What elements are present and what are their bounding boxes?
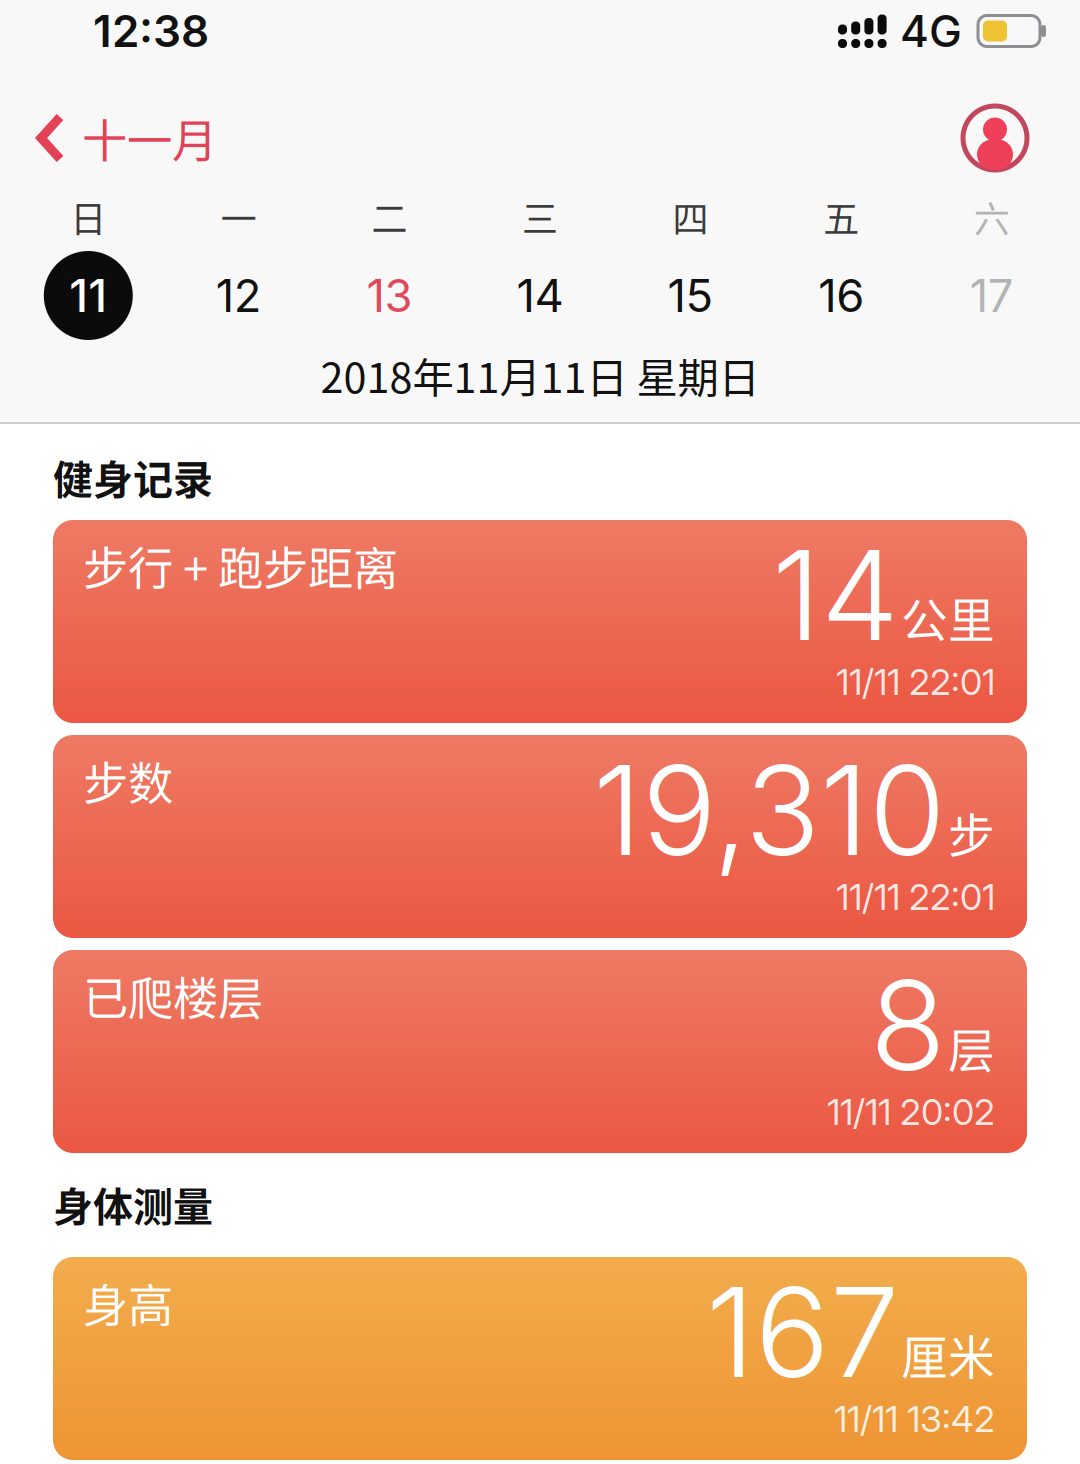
staticText: 12:38 [93, 4, 209, 58]
staticText: 层 [948, 1013, 995, 1081]
staticText: 4G [900, 4, 962, 58]
staticText: 11/11 22:01 [836, 875, 995, 919]
staticText: 步行 + 跑步距离 [83, 533, 398, 599]
staticText: 健身记录 [53, 448, 213, 506]
button[interactable]: Profile [942, 105, 1080, 171]
button[interactable]: 17 [916, 251, 1067, 340]
staticText: 步数 [83, 748, 173, 814]
button[interactable]: 身高 [53, 1257, 1027, 1460]
button[interactable]: 步行 + 跑步距离 [53, 520, 1027, 723]
button[interactable]: 12 [164, 251, 314, 340]
staticText: 167 [706, 1257, 899, 1407]
staticText: 三 [522, 191, 558, 243]
button[interactable]: 14 [465, 251, 615, 340]
button[interactable]: 十一月 [0, 105, 237, 171]
staticText: 二 [371, 191, 407, 243]
staticText: 11/11 13:42 [834, 1397, 995, 1441]
staticText: 四 [673, 191, 709, 243]
staticText: 六 [974, 191, 1010, 243]
staticText: 11/11 22:01 [836, 660, 995, 704]
staticText: 身体测量 [53, 1175, 213, 1233]
staticText: 15 [668, 268, 714, 323]
staticText: 14 [516, 268, 563, 323]
button[interactable]: 15 [615, 251, 766, 340]
staticText: 十一月 [82, 105, 217, 171]
button[interactable]: 11 [13, 251, 164, 340]
staticText: 11 [69, 268, 107, 323]
staticText: 13 [366, 268, 412, 323]
staticText: 一 [221, 191, 257, 243]
staticText: 五 [823, 191, 859, 243]
button[interactable]: 步数 [53, 735, 1027, 938]
staticText: 16 [818, 268, 864, 323]
staticText: 步 [948, 798, 995, 866]
staticText: 11/11 20:02 [827, 1090, 995, 1134]
staticText: 19,310 [593, 735, 946, 885]
staticText: 17 [970, 268, 1014, 323]
staticText: 12 [216, 268, 262, 323]
staticText: 已爬楼层 [83, 963, 263, 1029]
staticText: 2018年11月11日 星期日 [320, 345, 759, 405]
button[interactable]: 已爬楼层 [53, 950, 1027, 1153]
staticText: 14 [772, 520, 899, 670]
staticText: 8 [870, 950, 946, 1100]
staticText: 公里 [901, 583, 995, 651]
staticText: 日 [70, 191, 106, 243]
button[interactable]: 16 [766, 251, 916, 340]
staticText: 厘米 [901, 1320, 995, 1388]
button[interactable]: 13 [314, 251, 465, 340]
staticText: 身高 [83, 1270, 173, 1336]
